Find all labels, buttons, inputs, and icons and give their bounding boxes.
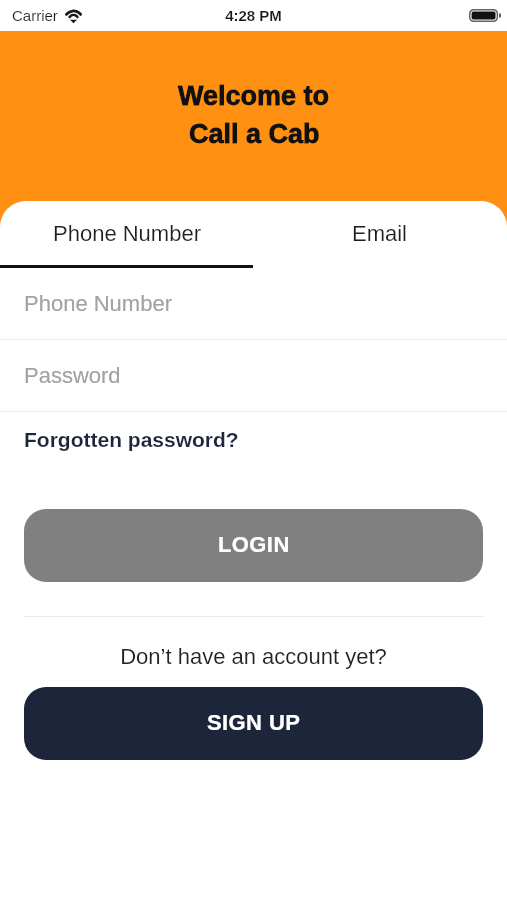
staticText: Email [352, 221, 408, 246]
button[interactable]: Email [253, 201, 507, 265]
staticText: Forgotten password? [24, 428, 239, 451]
staticText: Password [24, 363, 121, 388]
staticText: Phone Number [53, 221, 201, 246]
other: Wi-Fi [64, 8, 83, 23]
button[interactable]: LOGIN [24, 509, 483, 582]
button[interactable]: Password [0, 340, 507, 411]
button[interactable]: Phone Number [0, 201, 253, 265]
button[interactable]: Phone Number [0, 268, 507, 339]
staticText: SIGN UP [207, 710, 301, 735]
staticText: Call a Cab [189, 119, 320, 149]
staticText: Carrier [12, 7, 58, 24]
staticText: Don’t have an account yet? [0, 644, 507, 669]
button[interactable]: SIGN UP [24, 687, 483, 760]
staticText: LOGIN [218, 532, 290, 557]
other: Battery [469, 9, 501, 22]
staticText: Phone Number [24, 291, 172, 316]
staticText: Welcome to [178, 81, 330, 111]
staticText: 4:28 PM [0, 7, 507, 24]
button[interactable]: Forgotten password? [0, 422, 507, 457]
